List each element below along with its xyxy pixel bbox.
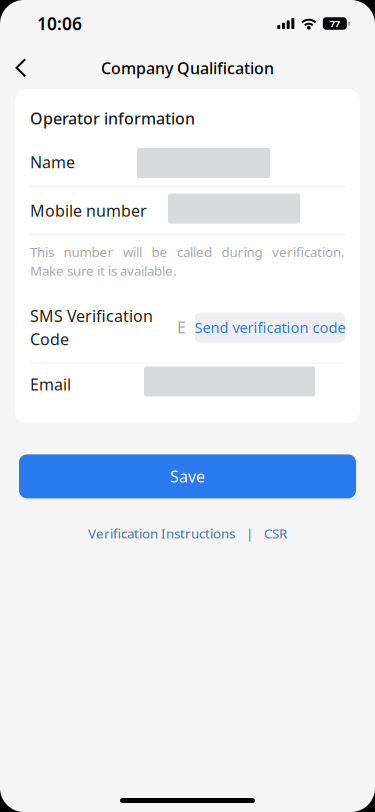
button[interactable]: Verification Instructions bbox=[88, 519, 235, 547]
staticText: called bbox=[177, 243, 212, 261]
staticText: SMS Verification bbox=[30, 305, 153, 326]
staticText: Company Qualification bbox=[101, 57, 274, 79]
staticText: number bbox=[63, 243, 113, 261]
button[interactable]: Save bbox=[19, 454, 356, 498]
staticText: Operator information bbox=[30, 108, 195, 129]
staticText: Make sure it is available. bbox=[30, 262, 177, 279]
staticText: Code bbox=[30, 328, 69, 350]
staticText: be bbox=[151, 243, 167, 261]
staticText: Mobile number bbox=[30, 200, 147, 221]
staticText: will bbox=[123, 243, 142, 261]
staticText: Verification Instructions bbox=[88, 524, 235, 542]
staticText: Send verification code bbox=[194, 318, 345, 337]
staticText: | bbox=[246, 524, 253, 542]
button[interactable]: CSR bbox=[264, 519, 287, 547]
staticText: during bbox=[221, 243, 262, 261]
staticText: verification. bbox=[272, 243, 345, 261]
staticText: 10:06 bbox=[37, 12, 82, 35]
staticText: CSR bbox=[264, 524, 287, 542]
staticText: Save bbox=[170, 466, 205, 487]
staticText: This bbox=[30, 243, 54, 261]
staticText: 77 bbox=[330, 17, 340, 30]
staticText: E bbox=[177, 317, 186, 338]
button[interactable]: Back bbox=[0, 47, 42, 89]
button[interactable]: Send verification code bbox=[195, 312, 345, 342]
staticText: Name bbox=[30, 151, 75, 173]
staticText: Email bbox=[30, 374, 71, 395]
